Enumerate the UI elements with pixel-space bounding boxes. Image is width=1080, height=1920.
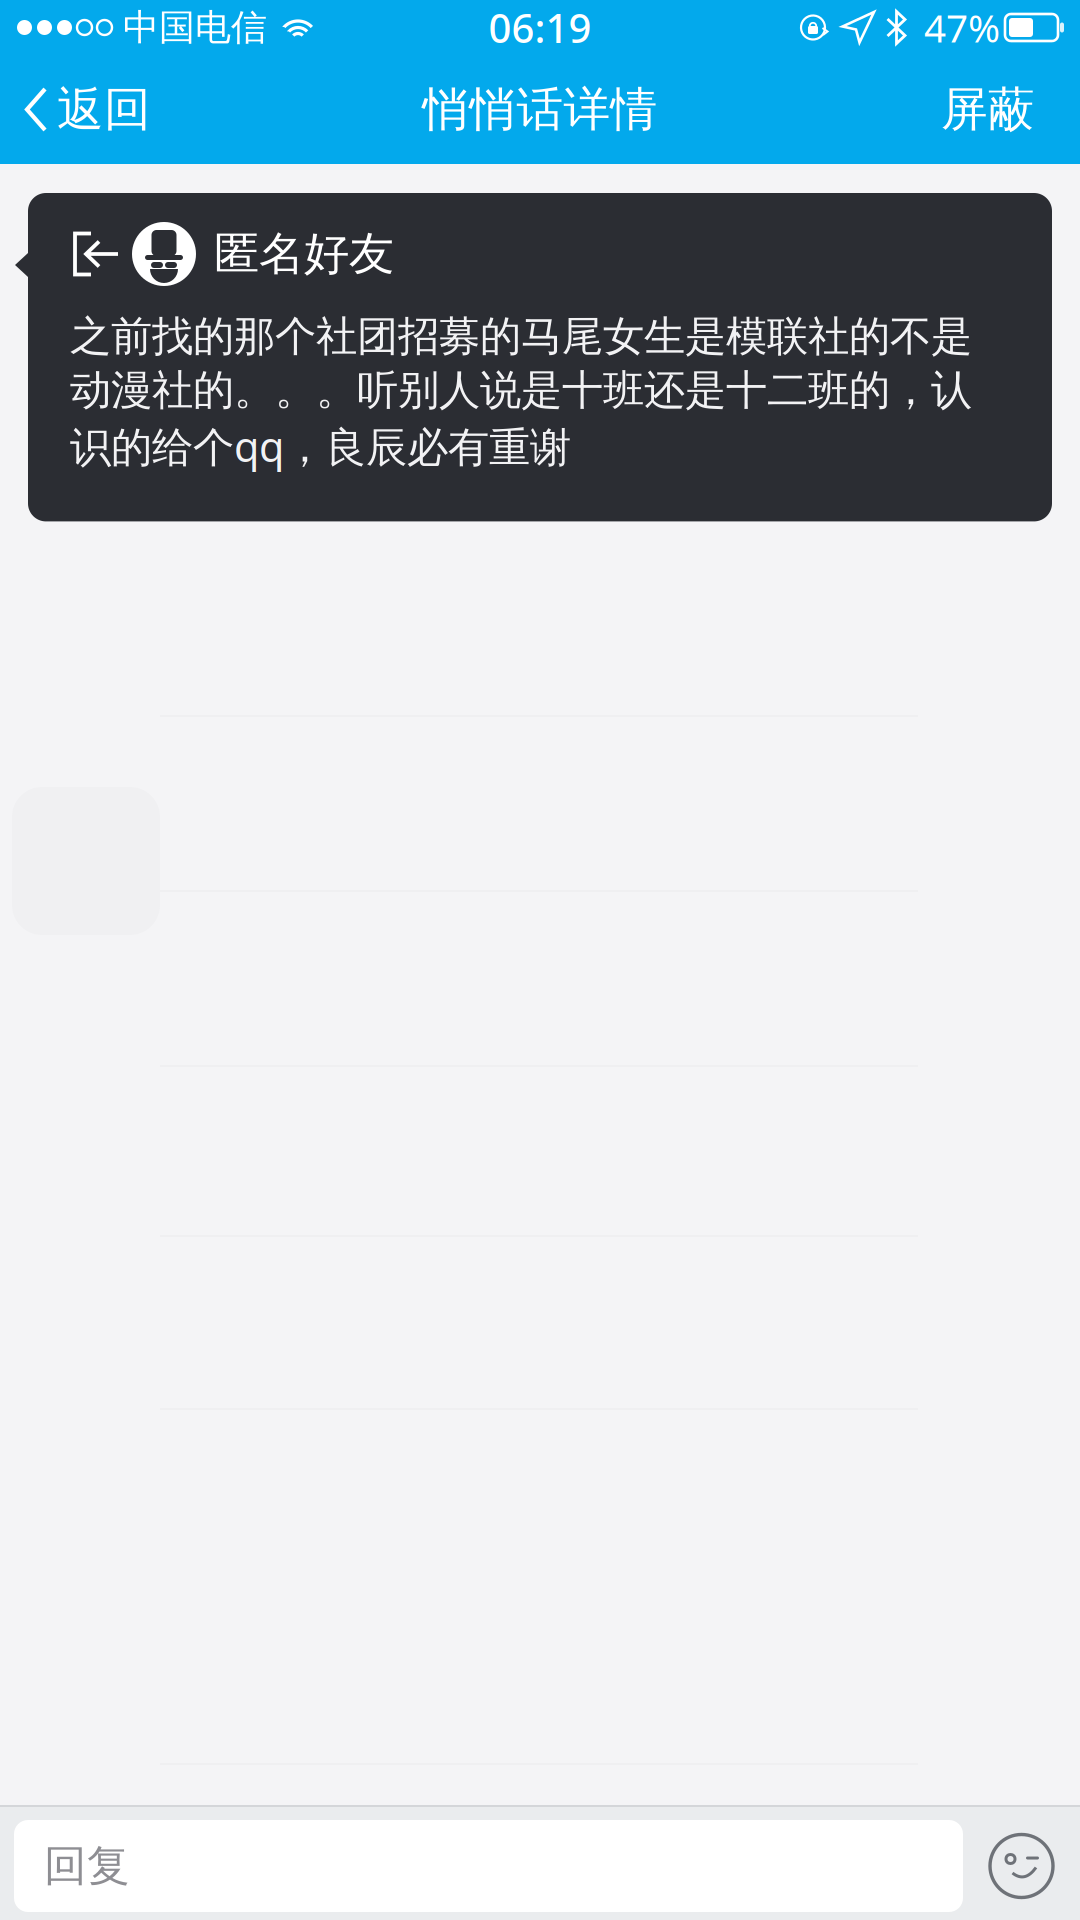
button[interactable]: Emoji (963, 1820, 1080, 1912)
staticText: 之前找的那个社团招募的马尾女生是模联社的不是 (70, 311, 972, 362)
staticText: 中国电信 (123, 5, 267, 50)
button[interactable]: 回复 (14, 1820, 963, 1912)
button[interactable]: 返回 (0, 55, 165, 164)
staticText: 识的给个qq，良辰必有重谢 (70, 418, 571, 473)
staticText: 动漫社的。。。听别人说是十班还是十二班的，认 (70, 365, 972, 416)
staticText: 47% (924, 2, 1000, 53)
button[interactable]: 匿名好友 (0, 193, 1080, 521)
staticText: 匿名好友 (214, 226, 394, 282)
staticText: 回复 (44, 1840, 130, 1892)
staticText: 屏蔽 (941, 81, 1035, 138)
staticText: 悄悄话详情 (422, 81, 657, 138)
staticText: 06:19 (488, 1, 591, 54)
staticText: 返回 (57, 81, 151, 138)
button[interactable]: 屏蔽 (927, 55, 1080, 164)
